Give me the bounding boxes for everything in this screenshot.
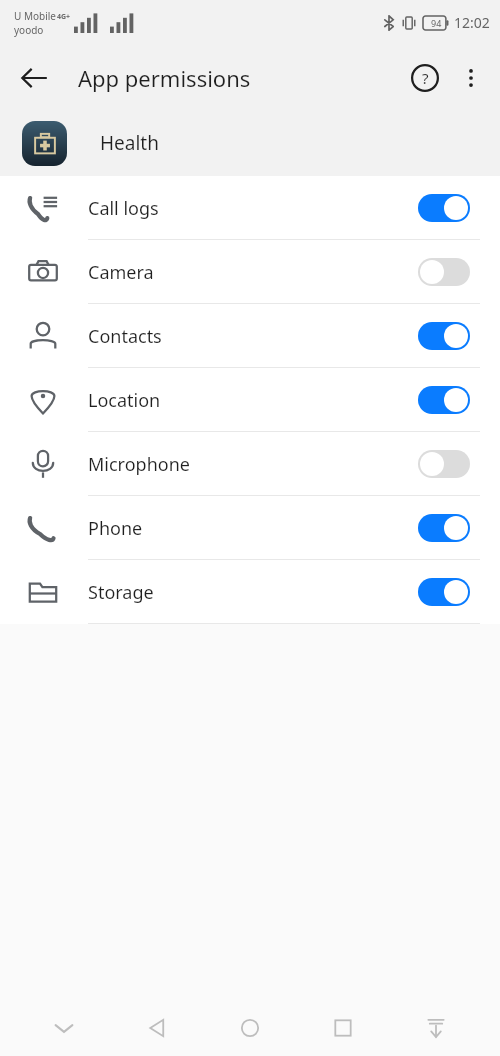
- button[interactable]: Storage toggle: [418, 578, 470, 606]
- staticText: Camera: [88, 260, 154, 285]
- button[interactable]: Call logs toggle: [418, 194, 470, 222]
- staticText: 4G+: [57, 12, 71, 22]
- staticText: Storage: [88, 580, 154, 605]
- staticText: ?: [422, 68, 429, 88]
- staticText: U Mobile: [14, 9, 56, 23]
- button[interactable]: Hide keyboard: [35, 1000, 93, 1056]
- staticText: Location: [88, 388, 161, 413]
- button[interactable]: Phone toggle: [418, 514, 470, 542]
- button[interactable]: Notifications: [407, 1000, 465, 1056]
- staticText: Call logs: [88, 196, 159, 221]
- button[interactable]: Home: [221, 1000, 279, 1056]
- button[interactable]: Call logs: [0, 176, 500, 240]
- staticText: 12:02: [454, 13, 490, 32]
- button[interactable]: Location: [0, 368, 500, 432]
- button[interactable]: Microphone: [0, 432, 500, 496]
- button[interactable]: Recents: [314, 1000, 372, 1056]
- staticText: yoodo: [14, 23, 44, 37]
- staticText: Phone: [88, 516, 143, 541]
- staticText: Health: [100, 130, 159, 156]
- staticText: Contacts: [88, 324, 162, 349]
- button[interactable]: Phone: [0, 496, 500, 560]
- staticText: Microphone: [88, 452, 190, 477]
- button[interactable]: Camera: [0, 240, 500, 304]
- button[interactable]: Contacts: [0, 304, 500, 368]
- button[interactable]: More options: [448, 55, 494, 101]
- button[interactable]: Back: [10, 54, 58, 102]
- button[interactable]: Microphone toggle: [418, 450, 470, 478]
- staticText: App permissions: [78, 63, 251, 93]
- button[interactable]: Storage: [0, 560, 500, 624]
- button[interactable]: Back: [128, 1000, 186, 1056]
- button[interactable]: Contacts toggle: [418, 322, 470, 350]
- staticText: 94: [431, 17, 442, 29]
- button[interactable]: Camera toggle: [418, 258, 470, 286]
- button[interactable]: Help: [402, 55, 448, 101]
- button[interactable]: Location toggle: [418, 386, 470, 414]
